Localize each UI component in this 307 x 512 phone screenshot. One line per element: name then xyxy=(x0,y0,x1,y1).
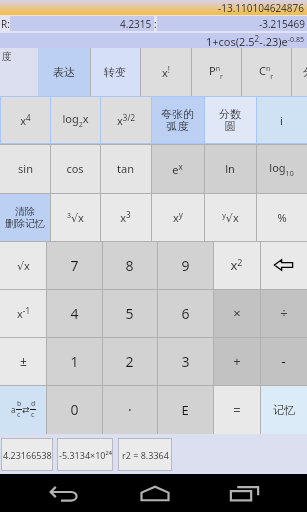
staticText: 2 xyxy=(125,352,134,371)
staticText: x2 xyxy=(230,256,243,274)
button[interactable]: x-1 xyxy=(0,289,46,337)
button[interactable]: -3.215469 xyxy=(157,16,307,31)
staticText: ± xyxy=(20,353,27,369)
staticText: 0 xyxy=(70,400,79,419)
button[interactable]: log10 xyxy=(256,144,307,193)
staticText: E xyxy=(181,401,189,419)
button[interactable]: 0 xyxy=(46,385,102,434)
button[interactable]: ÷ xyxy=(260,289,307,337)
staticText: sin xyxy=(18,161,33,176)
staticText: ln xyxy=(225,161,235,176)
button[interactable]: 6 xyxy=(157,289,213,337)
staticText: 8 xyxy=(125,256,134,275)
staticText: log2x xyxy=(62,111,89,129)
staticText: x4 xyxy=(20,112,31,128)
staticText: 6 xyxy=(181,304,190,323)
button[interactable]: tan xyxy=(100,144,151,193)
button[interactable]: × xyxy=(213,289,260,337)
staticText: r2 = 8.3364 xyxy=(122,449,169,461)
button[interactable]: 3√x xyxy=(50,193,100,241)
staticText: log10 xyxy=(269,160,294,178)
button[interactable]: Pnr xyxy=(191,48,241,96)
button[interactable]: + xyxy=(213,337,260,385)
button[interactable]: 清除 删除记忆 xyxy=(0,193,50,241)
button[interactable]: 8 xyxy=(102,241,157,289)
button[interactable]: log2x xyxy=(50,96,100,144)
staticText: c xyxy=(17,410,21,420)
button[interactable]: ln xyxy=(204,144,256,193)
button[interactable]: 3 xyxy=(157,337,213,385)
button[interactable]: 1+cos(2.52-.23)e-0.85 xyxy=(0,33,307,48)
button[interactable]: E xyxy=(157,385,213,434)
staticText: y√x xyxy=(222,210,239,225)
button[interactable]: - xyxy=(260,337,307,385)
staticText: 度 xyxy=(2,50,12,63)
staticText: : xyxy=(154,17,157,31)
button[interactable]: cos xyxy=(50,144,100,193)
button[interactable]: Cnr xyxy=(241,48,291,96)
staticText: 1 xyxy=(70,352,79,371)
button[interactable]: · xyxy=(102,385,157,434)
staticText: tan xyxy=(117,161,134,176)
button[interactable]: xy xyxy=(151,193,204,241)
button[interactable]: ex xyxy=(151,144,204,193)
button[interactable]: Fraction toggle xyxy=(0,385,46,434)
button[interactable]: x2 xyxy=(213,241,260,289)
button[interactable]: Recents xyxy=(181,474,307,512)
staticText: x-1 xyxy=(17,305,30,321)
button[interactable]: 4.2315 xyxy=(10,16,154,31)
staticText: 4.2315 xyxy=(120,17,152,31)
button[interactable]: x! xyxy=(140,48,191,96)
staticText: -3.215469 xyxy=(259,17,305,31)
button[interactable]: x3 xyxy=(100,193,151,241)
button[interactable]: Home xyxy=(128,474,181,512)
staticText: a xyxy=(11,404,16,415)
button[interactable]: % xyxy=(256,193,307,241)
staticText: i xyxy=(280,113,283,128)
staticText: ⇄ xyxy=(22,405,30,415)
button[interactable]: x4 xyxy=(0,96,50,144)
staticText: 4 xyxy=(70,304,79,323)
button[interactable]: ± xyxy=(0,337,46,385)
staticText: c xyxy=(31,410,35,420)
staticText: x3 xyxy=(120,209,131,225)
other: Backspace xyxy=(274,259,293,271)
button[interactable]: 记忆 xyxy=(260,385,307,434)
staticText: b xyxy=(17,399,22,409)
button[interactable]: x3/2 xyxy=(100,96,151,144)
staticText: R: xyxy=(1,17,10,31)
staticText: 3√x xyxy=(67,210,84,225)
staticText: 3 xyxy=(181,352,190,371)
button[interactable]: 5 xyxy=(102,289,157,337)
staticText: = xyxy=(233,401,241,419)
staticText: 9 xyxy=(181,256,190,275)
staticText: 7 xyxy=(70,256,79,275)
staticText: 分 xyxy=(303,65,307,79)
button[interactable]: 4 xyxy=(46,289,102,337)
button[interactable]: 2 xyxy=(102,337,157,385)
button[interactable]: 表达 xyxy=(38,48,90,96)
button[interactable]: 分 xyxy=(291,48,307,96)
button[interactable]: 1 xyxy=(46,337,102,385)
staticText: 表达 xyxy=(53,65,75,79)
button[interactable]: √x xyxy=(0,241,46,289)
button[interactable]: 分数 圆 xyxy=(204,96,256,144)
staticText: -5.3134×10²⁴ xyxy=(59,449,112,461)
button[interactable]: 转变 xyxy=(90,48,140,96)
button[interactable]: Backspace xyxy=(260,241,307,289)
staticText: d xyxy=(31,399,36,409)
button[interactable]: 7 xyxy=(46,241,102,289)
button[interactable]: = xyxy=(213,385,260,434)
staticText: Pnr xyxy=(209,63,223,81)
staticText: xy xyxy=(173,209,183,225)
button[interactable]: i xyxy=(256,96,307,144)
button[interactable]: y√x xyxy=(204,193,256,241)
button[interactable]: -5.3134×10²⁴ xyxy=(58,439,112,470)
button[interactable]: 9 xyxy=(157,241,213,289)
button[interactable]: 4.23166538 xyxy=(2,439,52,470)
button[interactable]: sin xyxy=(0,144,50,193)
staticText: 清除 删除记忆 xyxy=(5,205,45,230)
button[interactable]: 夸张的 弧度 xyxy=(151,96,204,144)
button[interactable]: Back xyxy=(0,474,128,512)
button[interactable]: r2 = 8.3364 xyxy=(119,439,171,470)
